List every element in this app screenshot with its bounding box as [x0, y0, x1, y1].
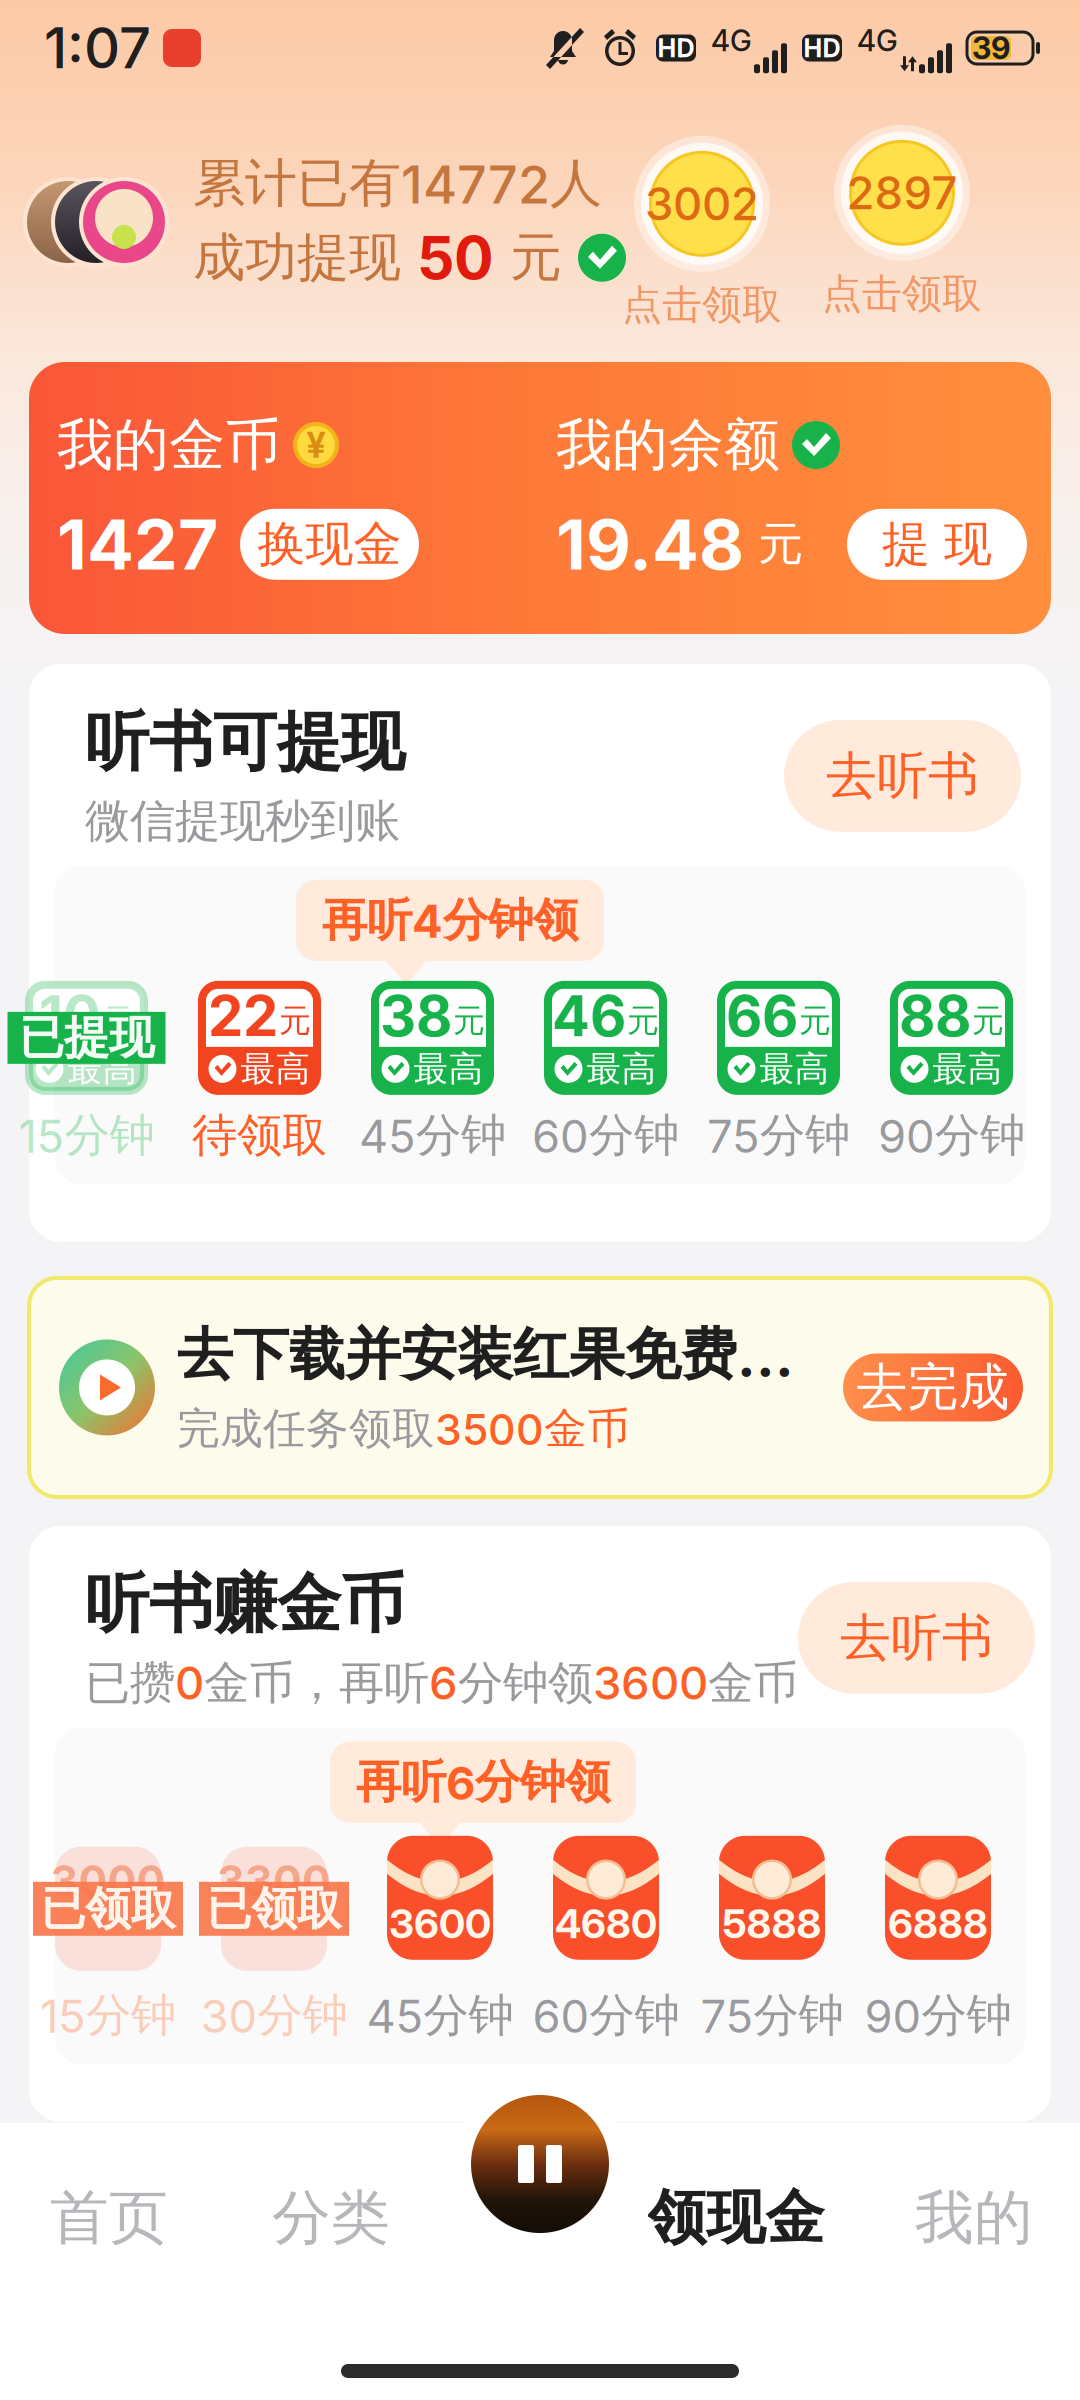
staticText: 46 — [552, 982, 626, 1050]
staticText: 元 — [744, 516, 803, 573]
button[interactable]: 46 — [548, 985, 663, 1164]
staticText: 45分钟 — [359, 1107, 506, 1164]
staticText: 去听书 — [826, 744, 979, 808]
button[interactable]: 领现金 — [604, 2123, 868, 2313]
staticText: 再听6分钟领 — [356, 1754, 610, 1811]
button[interactable]: 换现金 — [240, 509, 419, 580]
staticText: 75分钟 — [707, 1107, 850, 1164]
staticText: 45分钟 — [366, 1987, 513, 2044]
staticText: 再听4分钟领 — [322, 892, 578, 949]
staticText: 最高 — [759, 1047, 829, 1091]
staticText: 15分钟 — [18, 1107, 154, 1164]
button[interactable]: 3600 — [387, 1847, 493, 2044]
staticText: HD — [803, 33, 840, 63]
button[interactable]: 提 现 — [847, 509, 1027, 580]
staticText: 22 — [208, 982, 278, 1050]
staticText: 6888 — [888, 1900, 988, 1948]
button[interactable]: 分类 — [218, 2123, 444, 2313]
button[interactable]: Pause playback — [453, 2077, 627, 2251]
staticText: 分类 — [272, 2181, 390, 2255]
staticText: 3500金币 — [435, 1402, 630, 1456]
staticText: 元 — [102, 1001, 134, 1041]
staticText: 听书赚金币 — [85, 1564, 405, 1645]
staticText: 点击领取 — [622, 280, 782, 330]
staticText: 去下载并安装红果免费... — [177, 1319, 794, 1390]
staticText: 元 — [799, 1001, 831, 1041]
button[interactable]: 3000 — [55, 1847, 161, 2044]
staticText: 30分钟 — [200, 1987, 347, 2044]
staticText: 去完成 — [856, 1355, 1009, 1419]
staticText: 88 — [899, 982, 971, 1050]
staticText: 去听书 — [840, 1606, 993, 1670]
button[interactable]: 去听书 — [784, 720, 1021, 832]
staticText: 90分钟 — [878, 1107, 1025, 1164]
staticText: 4G — [711, 23, 752, 58]
staticText: 0 — [175, 1656, 204, 1711]
staticText: 66 — [726, 982, 798, 1050]
staticText: 19.48 — [556, 502, 744, 586]
staticText: 15分钟 — [40, 1987, 176, 2044]
staticText: 分钟领 — [458, 1655, 593, 1712]
staticText: 提 现 — [882, 514, 992, 574]
staticText: 我的 — [915, 2181, 1033, 2255]
button[interactable]: 首页 — [0, 2123, 218, 2313]
staticText: 最高 — [932, 1047, 1002, 1091]
button[interactable]: 3002 — [634, 136, 770, 330]
staticText: 元 — [627, 1001, 659, 1041]
staticText: 待领取 — [192, 1107, 327, 1164]
staticText: 3000 — [50, 1855, 165, 1906]
staticText: 听书可提现 — [85, 702, 405, 783]
staticText: 已领取 — [40, 1880, 175, 1937]
button[interactable]: 22 — [202, 985, 317, 1164]
staticText: 10 — [39, 982, 101, 1050]
button[interactable]: 去下载并安装红果免费... — [0, 1242, 1080, 1497]
button[interactable]: 10 — [29, 985, 144, 1164]
staticText: 金币，再听 — [204, 1655, 429, 1712]
staticText: 最高 — [586, 1047, 656, 1091]
staticText: 领现金 — [647, 2181, 824, 2255]
staticText: 2897 — [846, 165, 957, 220]
staticText: 75分钟 — [700, 1987, 843, 2044]
staticText: 最高 — [413, 1047, 483, 1091]
staticText: 首页 — [50, 2181, 168, 2255]
staticText: 3002 — [645, 176, 759, 231]
staticText: 已领取 — [206, 1880, 341, 1937]
staticText: 1427 — [57, 502, 218, 586]
staticText: 我的余额 — [556, 410, 780, 480]
button[interactable]: 66 — [721, 985, 836, 1164]
staticText: 我的金币 — [57, 410, 281, 480]
staticText: 微信提现秒到账 — [85, 793, 400, 850]
staticText: 点击领取 — [822, 269, 982, 319]
staticText: 3600 — [389, 1900, 491, 1948]
staticText: 3600 — [593, 1656, 708, 1711]
staticText: 成功提现 — [193, 225, 417, 290]
staticText: 1:07 — [44, 14, 151, 82]
button[interactable]: 5888 — [719, 1847, 825, 2044]
staticText: 50 — [417, 222, 494, 293]
staticText: 元 — [972, 1001, 1004, 1041]
staticText: 金币 — [708, 1655, 798, 1712]
button[interactable]: 3300 — [221, 1847, 327, 2044]
button[interactable]: 去听书 — [798, 1582, 1035, 1694]
staticText: 元 — [494, 225, 562, 290]
staticText: 已提现 — [19, 1009, 154, 1066]
staticText: 39 — [972, 29, 1010, 66]
staticText: ¥ — [306, 424, 325, 466]
button[interactable]: 4680 — [553, 1847, 659, 2044]
staticText: 4G — [857, 23, 898, 58]
staticText: 60分钟 — [532, 1987, 679, 2044]
staticText: HD — [657, 33, 694, 63]
button[interactable]: 2897 — [834, 125, 970, 319]
staticText: 3300 — [217, 1855, 331, 1906]
staticText: 最高 — [240, 1047, 310, 1091]
button[interactable]: 88 — [894, 985, 1009, 1164]
button[interactable]: 我的 — [868, 2123, 1080, 2313]
button[interactable]: 6888 — [885, 1847, 991, 2044]
staticText: 5888 — [722, 1900, 821, 1948]
staticText: 完成任务领取 — [177, 1402, 435, 1456]
staticText: 38 — [380, 982, 452, 1050]
staticText: 已攒 — [85, 1655, 175, 1712]
staticText: 最高 — [67, 1047, 137, 1091]
button[interactable]: 38 — [375, 985, 490, 1164]
staticText: 4680 — [555, 1900, 657, 1948]
